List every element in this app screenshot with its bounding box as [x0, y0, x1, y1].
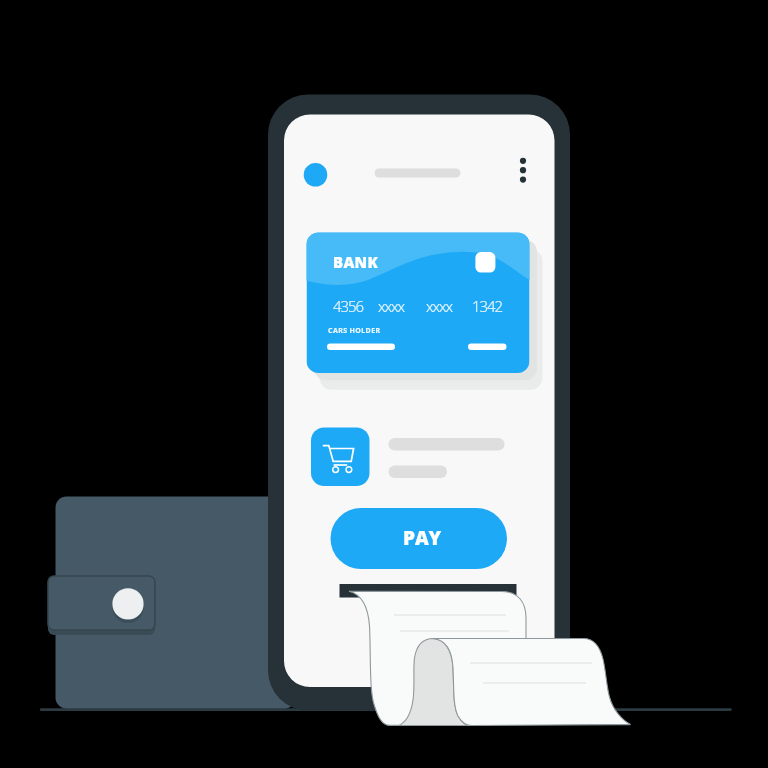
staticText: xxxx — [378, 296, 404, 316]
button[interactable]: PAY — [330, 508, 507, 569]
button[interactable]: Profile — [315, 164, 337, 186]
staticText: 1342 — [472, 296, 502, 316]
staticText: CARS HOLDER — [328, 326, 381, 336]
staticText: xxxx — [426, 296, 452, 316]
staticText: PAY — [403, 525, 443, 551]
staticText: BANK — [333, 252, 379, 272]
button[interactable]: Cart item — [311, 427, 505, 486]
button[interactable]: Bank card 4356 xxxx xxxx 1342 — [306, 232, 530, 373]
staticText: 4356 — [333, 296, 363, 316]
button[interactable]: More options — [512, 152, 534, 190]
